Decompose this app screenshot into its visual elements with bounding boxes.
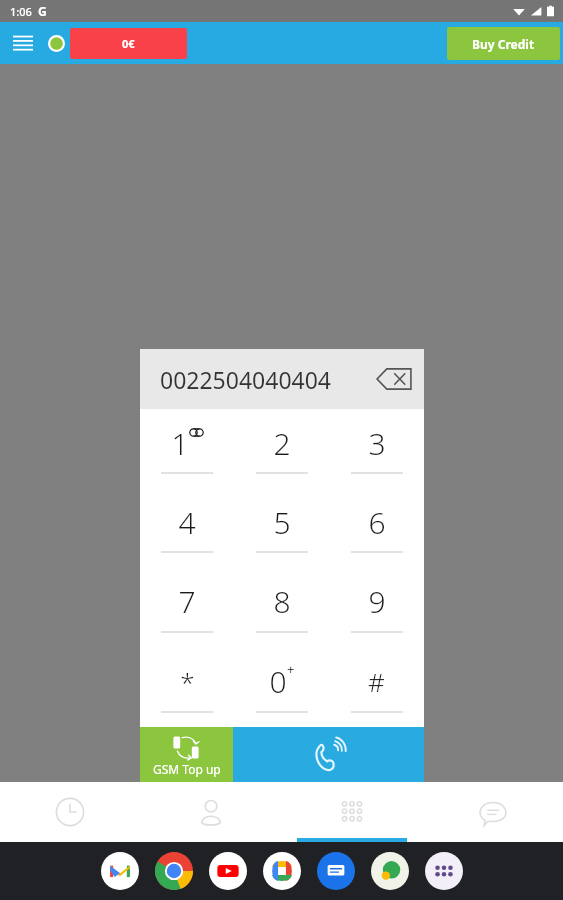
staticText: +	[287, 660, 295, 678]
button[interactable]: GSM Top up	[140, 727, 233, 785]
staticText: 1:06	[10, 4, 32, 19]
button[interactable]: Recents	[0, 782, 140, 842]
button[interactable]: Call	[233, 727, 424, 785]
staticText: G	[38, 3, 47, 19]
button[interactable]: Photos	[262, 851, 302, 891]
button[interactable]: Menu	[8, 28, 38, 58]
button[interactable]: 0022504040404	[140, 349, 424, 409]
button[interactable]: 0€	[70, 28, 187, 59]
staticText: 0022504040404	[160, 364, 332, 395]
button[interactable]: 3	[329, 409, 424, 488]
staticText: 6	[368, 502, 386, 543]
button[interactable]: 5	[234, 488, 329, 567]
staticText: 0€	[122, 36, 135, 51]
button[interactable]: 0	[234, 647, 329, 727]
button[interactable]: Contacts	[140, 782, 281, 842]
button[interactable]: Messages	[422, 782, 563, 842]
button[interactable]: #	[329, 647, 424, 727]
button[interactable]: 7	[140, 567, 234, 647]
staticText: 1	[171, 423, 189, 464]
button[interactable]: All apps	[424, 851, 464, 891]
staticText: 9	[368, 581, 386, 622]
button[interactable]: Buy Credit	[447, 27, 560, 60]
button[interactable]: 8	[234, 567, 329, 647]
button[interactable]: Gmail	[100, 851, 140, 891]
staticText: Buy Credit	[472, 36, 535, 52]
button[interactable]: 1	[140, 409, 234, 488]
button[interactable]: 9	[329, 567, 424, 647]
button[interactable]: *	[140, 647, 234, 727]
staticText: GSM Top up	[153, 761, 221, 777]
button[interactable]: Chrome	[154, 851, 194, 891]
staticText: 0	[269, 661, 287, 702]
button[interactable]: Status	[45, 32, 67, 54]
staticText: 8	[273, 581, 291, 622]
button[interactable]: Backspace	[372, 362, 416, 396]
button[interactable]: 4	[140, 488, 234, 567]
staticText: 3	[368, 423, 386, 464]
staticText: 2	[273, 423, 291, 464]
button[interactable]: YouTube	[208, 851, 248, 891]
button[interactable]: Dialpad	[281, 782, 422, 842]
staticText: *	[180, 664, 195, 699]
button[interactable]: 2	[234, 409, 329, 488]
staticText: #	[368, 664, 385, 699]
button[interactable]: Messages	[316, 851, 356, 891]
staticText: 5	[273, 502, 291, 543]
staticText: 7	[178, 581, 196, 622]
staticText: 4	[178, 502, 196, 543]
button[interactable]: 6	[329, 488, 424, 567]
button[interactable]: Maps	[370, 851, 410, 891]
